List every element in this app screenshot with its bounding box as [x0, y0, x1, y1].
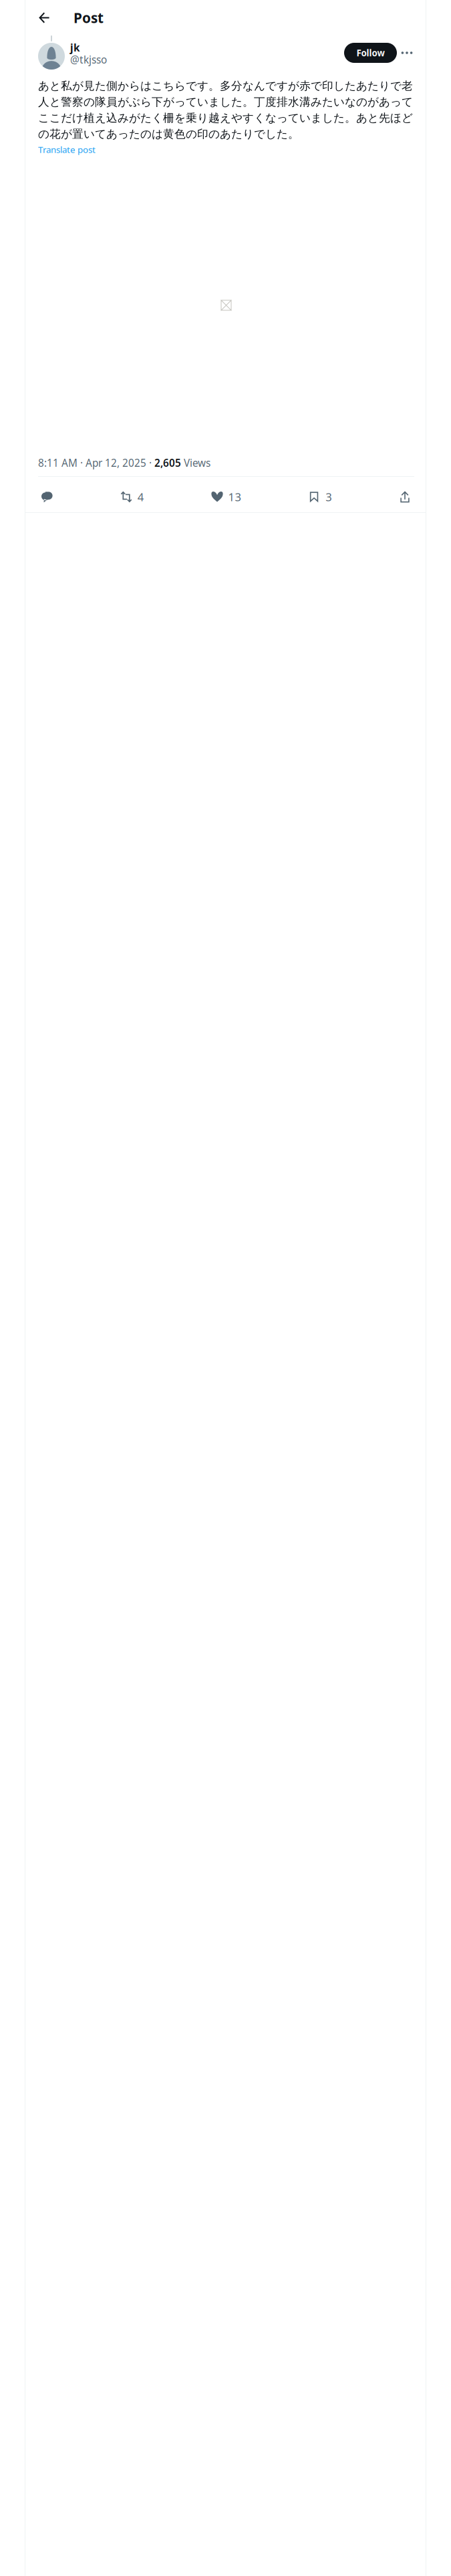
button[interactable]: Repost — [117, 485, 147, 509]
button[interactable]: More — [400, 43, 414, 63]
staticText: あと私が見た側からはこちらです。多分なんですが赤で印したあたりで老人と警察の隊員… — [38, 79, 413, 141]
staticText: 13 — [228, 489, 242, 504]
button[interactable]: Bookmark — [305, 485, 335, 509]
staticText: Follow — [356, 47, 385, 59]
staticText: @tkjsso — [70, 53, 107, 67]
staticText: Views — [181, 456, 210, 470]
staticText: Translate post — [38, 143, 96, 156]
button[interactable]: Like — [208, 485, 244, 509]
staticText: 2,605 — [154, 456, 181, 470]
button[interactable]: Reply — [38, 485, 56, 509]
staticText: Post — [73, 8, 104, 27]
staticText: 3 — [326, 489, 332, 504]
button[interactable]: Follow — [344, 43, 397, 63]
button[interactable]: Share — [396, 485, 414, 509]
staticText: jk — [70, 41, 80, 55]
staticText: 8:11 AM · Apr 12, 2025 · — [38, 456, 154, 470]
staticText: 4 — [138, 489, 144, 504]
image — [221, 300, 232, 311]
button[interactable]: Translate post — [38, 143, 96, 156]
button[interactable]: Back — [33, 6, 55, 29]
